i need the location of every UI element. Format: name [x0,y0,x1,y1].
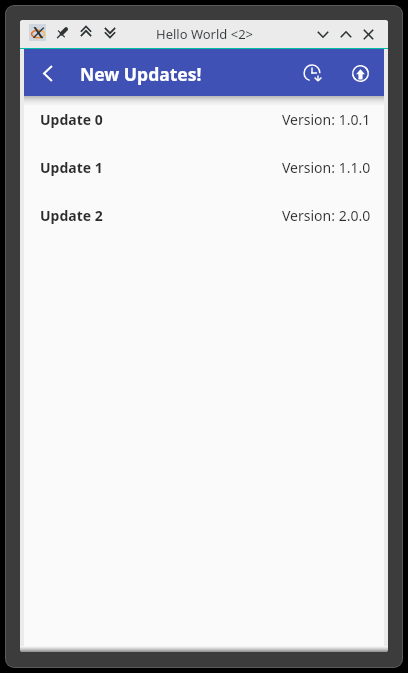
staticText: Update 1 [40,158,103,177]
button[interactable]: Update 0 [24,95,384,143]
staticText: Update 2 [40,206,103,225]
button[interactable]: Maximize [334,22,357,46]
staticText: Update 0 [40,110,103,129]
button[interactable]: Update 2 [24,191,384,239]
button[interactable]: Update 1 [24,143,384,191]
staticText: Version: 1.0.1 [282,110,371,129]
staticText: New Updates! [80,62,202,86]
button[interactable]: Window menu [29,24,46,41]
button[interactable]: Pin window [50,20,74,44]
staticText: Hello World <2> [156,25,254,43]
staticText: Version: 2.0.0 [282,206,371,225]
button[interactable]: Back [35,53,61,93]
staticText: Version: 1.1.0 [282,158,371,177]
button[interactable]: System update [345,53,375,93]
button[interactable]: Close [357,22,380,46]
button[interactable]: Lower window [98,20,122,44]
button[interactable]: Minimize [311,22,334,46]
button[interactable]: Update history [298,53,328,93]
button[interactable]: Raise window [74,20,98,44]
